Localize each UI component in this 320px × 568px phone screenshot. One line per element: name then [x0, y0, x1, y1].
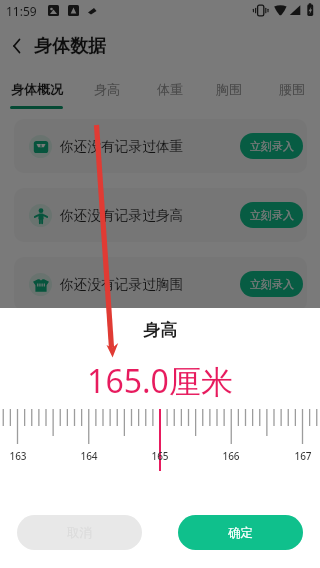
staticText: 166 — [211, 449, 251, 463]
button[interactable]: 体重 — [142, 76, 198, 112]
button[interactable]: 腰围 — [264, 76, 320, 112]
staticText: 身体概况 — [11, 81, 63, 97]
button[interactable]: 确定 — [178, 515, 303, 550]
staticText: 腰围 — [279, 81, 305, 97]
staticText: 取消 — [67, 525, 92, 541]
button[interactable]: 身高 — [79, 76, 135, 112]
staticText: 身高 — [94, 81, 120, 97]
staticText: 体重 — [157, 81, 183, 97]
staticText: 163 — [0, 449, 38, 463]
button[interactable]: 立刻录入 — [240, 133, 303, 159]
staticText: 确定 — [228, 525, 253, 541]
staticText: 165.0厘米 — [0, 359, 320, 403]
button[interactable]: 胸围 — [201, 76, 257, 112]
staticText: 立刻录入 — [250, 139, 294, 153]
button[interactable]: Back — [6, 35, 28, 57]
button[interactable]: 你还没有记录过身高 — [14, 188, 307, 242]
staticText: 你还没有记录过身高 — [60, 207, 184, 224]
staticText: 你还没有记录过体重 — [60, 138, 184, 155]
button[interactable]: 立刻录入 — [240, 271, 303, 297]
button[interactable]: 取消 — [17, 515, 142, 550]
staticText: 立刻录入 — [250, 277, 294, 291]
staticText: 立刻录入 — [250, 208, 294, 222]
button[interactable]: 立刻录入 — [240, 202, 303, 228]
staticText: 165 — [140, 449, 180, 463]
staticText: 你还没有记录过胸围 — [60, 276, 184, 293]
button[interactable]: 身体概况 — [1, 76, 71, 112]
button[interactable]: 你还没有记录过体重 — [14, 119, 307, 173]
button[interactable]: 你还没有记录过胸围 — [14, 257, 307, 311]
staticText: 身体数据 — [34, 35, 106, 57]
staticText: 11:59 — [6, 3, 37, 19]
staticText: 167 — [283, 449, 320, 463]
staticText: 身高 — [0, 320, 320, 341]
staticText: 胸围 — [216, 81, 242, 97]
staticText: 164 — [69, 449, 109, 463]
